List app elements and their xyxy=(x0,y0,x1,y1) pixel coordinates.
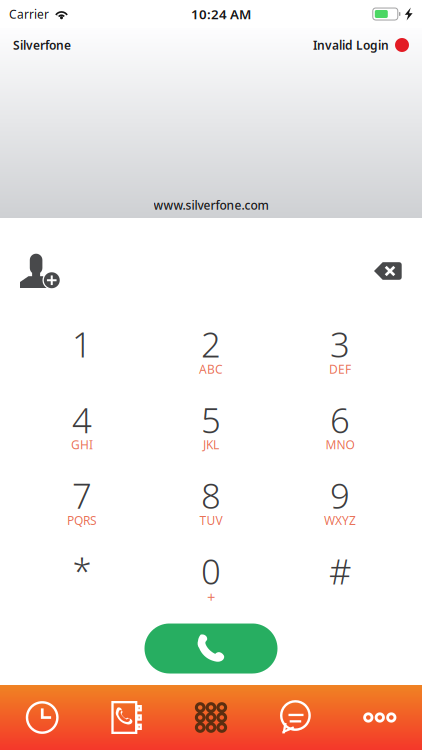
button[interactable]: 4 xyxy=(19,396,145,468)
staticText: 8 xyxy=(201,472,221,518)
button[interactable]: Call xyxy=(144,623,277,673)
staticText: MNO xyxy=(325,437,354,453)
staticText: 0 xyxy=(201,548,221,594)
staticText: DEF xyxy=(329,361,351,377)
button[interactable]: 8 xyxy=(148,471,274,543)
staticText: 4 xyxy=(72,397,92,443)
staticText: ABC xyxy=(199,361,223,377)
staticText: 7 xyxy=(72,472,92,518)
staticText: Silverfone xyxy=(13,37,71,53)
button[interactable]: Recents xyxy=(0,685,84,750)
staticText: WXYZ xyxy=(324,512,356,528)
button[interactable]: 0 xyxy=(148,547,274,619)
staticText: 6 xyxy=(330,397,350,443)
button[interactable]: Delete xyxy=(364,249,412,293)
button[interactable]: Keypad xyxy=(169,685,253,750)
button[interactable]: 1 xyxy=(19,320,145,392)
button[interactable]: More xyxy=(338,685,422,750)
staticText: 3 xyxy=(330,321,350,367)
staticText: 5 xyxy=(201,397,221,443)
staticText: Invalid Login xyxy=(313,37,389,53)
button[interactable]: 5 xyxy=(148,396,274,468)
button[interactable]: 6 xyxy=(277,396,403,468)
button[interactable]: Contacts xyxy=(84,685,169,750)
staticText: PQRS xyxy=(67,512,97,528)
staticText: 1 xyxy=(72,321,92,367)
staticText: # xyxy=(329,548,351,594)
staticText: TUV xyxy=(199,512,222,528)
staticText: 10:24 AM xyxy=(191,5,251,23)
button[interactable]: 2 xyxy=(148,320,274,392)
button[interactable]: # xyxy=(277,547,403,619)
staticText: * xyxy=(72,548,91,594)
staticText: www.silverfone.com xyxy=(153,197,268,213)
button[interactable]: 3 xyxy=(277,320,403,392)
staticText: + xyxy=(207,587,215,607)
staticText: GHI xyxy=(71,437,93,453)
button[interactable]: 9 xyxy=(277,471,403,543)
staticText: Carrier xyxy=(9,6,49,22)
button[interactable]: * xyxy=(19,547,145,619)
button[interactable]: Add contact xyxy=(15,249,69,293)
button[interactable]: Messages xyxy=(253,685,338,750)
staticText: JKL xyxy=(203,437,219,453)
button[interactable]: 7 xyxy=(19,471,145,543)
staticText: 9 xyxy=(330,472,350,518)
button[interactable]: Invalid Login xyxy=(313,29,409,61)
staticText: 2 xyxy=(201,321,221,367)
